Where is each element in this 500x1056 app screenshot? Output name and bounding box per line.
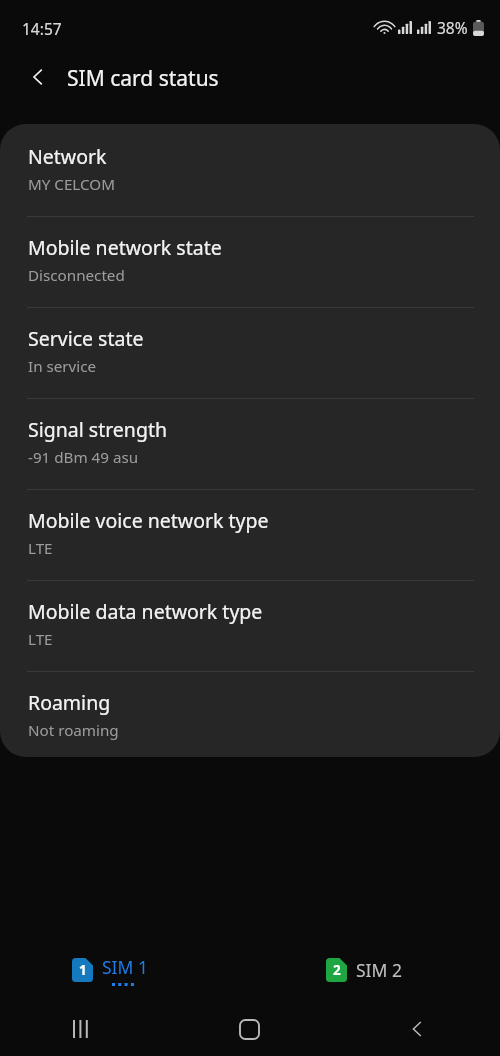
staticText: -91 dBm 49 asu <box>28 447 139 468</box>
button[interactable]: Home <box>166 1002 333 1056</box>
staticText: Mobile network state <box>28 234 222 261</box>
staticText: In service <box>28 356 97 377</box>
staticText: Disconnected <box>28 265 125 286</box>
staticText: LTE <box>28 629 53 650</box>
staticText: LTE <box>28 538 53 559</box>
button[interactable]: Service state <box>0 308 500 398</box>
staticText: 14:57 <box>22 18 62 39</box>
staticText: Mobile data network type <box>28 598 263 625</box>
button[interactable]: Back <box>14 53 62 101</box>
button[interactable]: Mobile network state <box>0 217 500 307</box>
staticText: 2 <box>333 961 341 979</box>
button[interactable]: Signal strength <box>0 399 500 489</box>
staticText: SIM card status <box>67 64 219 93</box>
button[interactable]: Back <box>333 1002 500 1056</box>
staticText: Signal strength <box>28 416 167 443</box>
staticText: Mobile voice network type <box>28 507 269 534</box>
staticText: 1 <box>79 961 87 979</box>
staticText: MY CELCOM <box>28 174 115 195</box>
button[interactable]: Roaming <box>0 672 500 757</box>
button[interactable]: Recents <box>0 1002 166 1056</box>
staticText: Service state <box>28 325 144 352</box>
staticText: SIM 2 <box>356 958 402 982</box>
staticText: SIM 1 <box>102 955 148 979</box>
staticText: Roaming <box>28 689 111 716</box>
button[interactable]: 2 <box>326 948 402 992</box>
button[interactable]: Mobile data network type <box>0 581 500 671</box>
button[interactable]: Network <box>0 124 500 216</box>
staticText: Network <box>28 143 107 170</box>
button[interactable]: 1 <box>72 948 148 992</box>
staticText: Not roaming <box>28 720 119 741</box>
staticText: 38% <box>437 17 468 38</box>
button[interactable]: Mobile voice network type <box>0 490 500 580</box>
